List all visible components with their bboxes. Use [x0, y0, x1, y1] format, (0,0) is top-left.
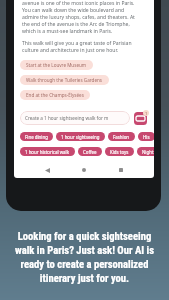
button[interactable]: Night: [137, 147, 154, 156]
button[interactable]: Start at the Louvre Museum: [20, 60, 93, 70]
staticText: Night: [142, 149, 154, 155]
button[interactable]: Fashion: [108, 132, 135, 141]
staticText: This walk will give you a great taste of…: [22, 40, 132, 54]
staticText: 1 hour historical walk: [25, 149, 70, 155]
staticText: Fine dining: [25, 134, 48, 140]
staticText: Fashion: [113, 134, 130, 140]
button[interactable]: 1 hour sightseeing: [56, 132, 105, 141]
button[interactable]: 1 hour historical walk: [20, 147, 75, 156]
button[interactable]: Walk through the Tuileries Gardens: [20, 75, 109, 85]
staticText: Create a 1 hour sightseeing walk for m: [25, 115, 109, 121]
button[interactable]: Fine dining: [20, 132, 53, 141]
staticText: Looking for a quick sightseeing walk in …: [7, 230, 162, 285]
staticText: Start at the Louvre Museum: [26, 62, 87, 68]
button[interactable]: Home: [74, 160, 94, 178]
staticText: Kids toys: [110, 149, 129, 155]
button[interactable]: Create a 1 hour sightseeing walk for m: [20, 111, 130, 125]
staticText: 1: [145, 111, 148, 116]
staticText: End at the Champs-Élysées: [26, 92, 84, 98]
button[interactable]: Recents: [111, 160, 131, 178]
button[interactable]: Kids toys: [105, 147, 134, 156]
button[interactable]: Coffee: [78, 147, 102, 156]
button[interactable]: Back: [37, 160, 57, 178]
staticText: 1 hour sightseeing: [61, 134, 100, 140]
staticText: avenue is one of the most iconic places …: [22, 0, 135, 35]
staticText: Walk through the Tuileries Gardens: [26, 77, 103, 83]
staticText: His: [143, 134, 150, 140]
button[interactable]: His: [138, 132, 154, 141]
button[interactable]: End at the Champs-Élysées: [20, 90, 90, 100]
button[interactable]: Send: [134, 112, 147, 125]
staticText: Coffee: [83, 149, 97, 155]
